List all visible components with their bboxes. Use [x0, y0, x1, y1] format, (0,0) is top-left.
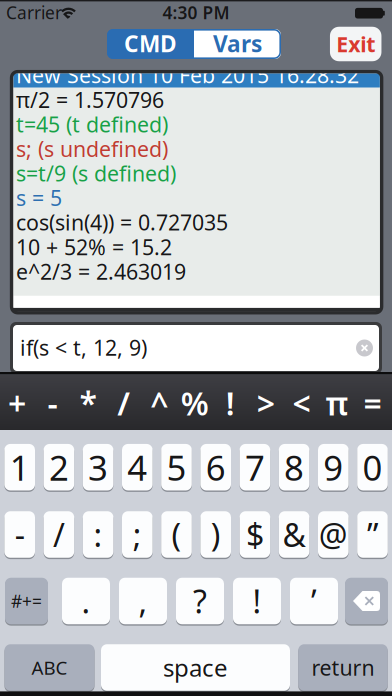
button[interactable]: 6 [200, 444, 231, 490]
staticText: ’ [311, 580, 317, 622]
staticText: ! [226, 382, 235, 424]
staticText: , [138, 580, 147, 622]
staticText: 5 [166, 444, 186, 490]
staticText: ; [133, 513, 142, 556]
button[interactable]: ABC [4, 644, 94, 691]
staticText: ( [171, 513, 181, 556]
staticText: . [81, 580, 90, 622]
staticText: s = 5 [16, 184, 62, 212]
button[interactable]: Vars [194, 29, 281, 59]
staticText: * [80, 382, 97, 424]
staticText: s; (s undefined) [16, 134, 168, 163]
staticText: : [94, 513, 103, 556]
staticText: ^ [150, 382, 168, 424]
staticText: % [181, 382, 209, 424]
button[interactable]: 5 [161, 444, 192, 490]
button[interactable]: 2 [44, 444, 74, 490]
staticText: cos(sin(4)) = 0.727035 [16, 208, 228, 236]
staticText: 10 + 52% = 15.2 [16, 233, 172, 261]
button[interactable]: Delete [345, 578, 388, 624]
button[interactable]: Insert + [0, 378, 34, 428]
button[interactable]: 4 [122, 444, 153, 490]
staticText: 1 [10, 444, 30, 490]
staticText: = [363, 382, 381, 424]
button[interactable]: ” [357, 511, 388, 558]
staticText: & [283, 513, 306, 556]
staticText: - [47, 382, 57, 424]
button[interactable]: , [119, 578, 167, 624]
staticText: ) [211, 513, 221, 556]
button[interactable]: Insert % [177, 378, 212, 428]
staticText: if(s < t, 12, 9) [20, 333, 147, 362]
button[interactable]: $ [240, 511, 270, 558]
button[interactable]: Insert = [355, 378, 390, 428]
button[interactable]: space [101, 644, 290, 691]
staticText: 4 [127, 444, 147, 490]
staticText: #+= [11, 589, 42, 612]
button[interactable]: ’ [290, 578, 338, 624]
button[interactable]: / [44, 511, 74, 558]
button[interactable]: Insert ^ [142, 378, 177, 428]
staticText: ABC [31, 655, 67, 680]
button[interactable]: ) [200, 511, 231, 558]
button[interactable]: 8 [279, 444, 309, 490]
staticText: π/2 = 1.570796 [16, 85, 164, 114]
button[interactable]: 9 [318, 444, 349, 490]
staticText: + [8, 382, 26, 424]
staticText: / [53, 513, 65, 556]
button[interactable]: ( [161, 511, 192, 558]
button[interactable]: Insert / [106, 378, 141, 428]
staticText: π [325, 382, 348, 424]
staticText: e^2/3 = 2.463019 [16, 257, 186, 285]
button[interactable]: @ [318, 511, 349, 558]
button[interactable]: - [4, 511, 35, 558]
button[interactable]: 0 [357, 444, 388, 490]
staticText: / [117, 382, 130, 424]
staticText: 2 [49, 444, 69, 490]
staticText: Carrier [6, 1, 62, 24]
button[interactable]: #+= [5, 578, 48, 624]
staticText: t=45 (t defined) [16, 110, 168, 138]
button[interactable]: ? [176, 578, 224, 624]
button[interactable]: Insert > [248, 378, 283, 428]
button[interactable]: Insert < [284, 378, 319, 428]
staticText: 8 [284, 444, 304, 490]
button[interactable]: Insert π [319, 378, 354, 428]
button[interactable]: Insert - [35, 378, 70, 428]
button[interactable]: Insert ! [213, 378, 248, 428]
button[interactable]: Exit [330, 27, 381, 61]
button[interactable]: & [279, 511, 309, 558]
staticText: 7 [245, 444, 265, 490]
button[interactable]: Insert * [71, 378, 106, 428]
staticText: Exit [336, 30, 375, 58]
staticText: @ [319, 513, 348, 556]
staticText: 3 [88, 444, 108, 490]
staticText: s=t/9 (s defined) [16, 159, 176, 187]
staticText: - [15, 513, 25, 556]
button[interactable]: ; [122, 511, 153, 558]
staticText: Vars [213, 28, 262, 58]
staticText: space [163, 652, 228, 683]
button[interactable]: 3 [83, 444, 113, 490]
staticText: ? [193, 580, 207, 622]
staticText: 0 [362, 444, 382, 490]
staticText: 4:30 PM [162, 1, 229, 24]
button[interactable]: CMD [107, 29, 194, 59]
staticText: CMD [124, 28, 177, 58]
staticText: New Session 10 Feb 2015 16.28.32 [16, 61, 359, 89]
button[interactable]: Clear text [356, 339, 373, 356]
staticText: 6 [206, 444, 226, 490]
staticText: $ [246, 513, 264, 556]
button[interactable]: 7 [240, 444, 270, 490]
staticText: ” [367, 513, 378, 556]
staticText: return [311, 653, 374, 682]
staticText: 9 [323, 444, 343, 490]
staticText: < [292, 382, 310, 424]
button[interactable]: 1 [4, 444, 35, 490]
button[interactable]: : [83, 511, 113, 558]
staticText: > [257, 382, 275, 424]
button[interactable]: . [62, 578, 110, 624]
button[interactable]: ! [233, 578, 281, 624]
button[interactable]: return [298, 644, 388, 691]
staticText: ! [252, 580, 261, 622]
